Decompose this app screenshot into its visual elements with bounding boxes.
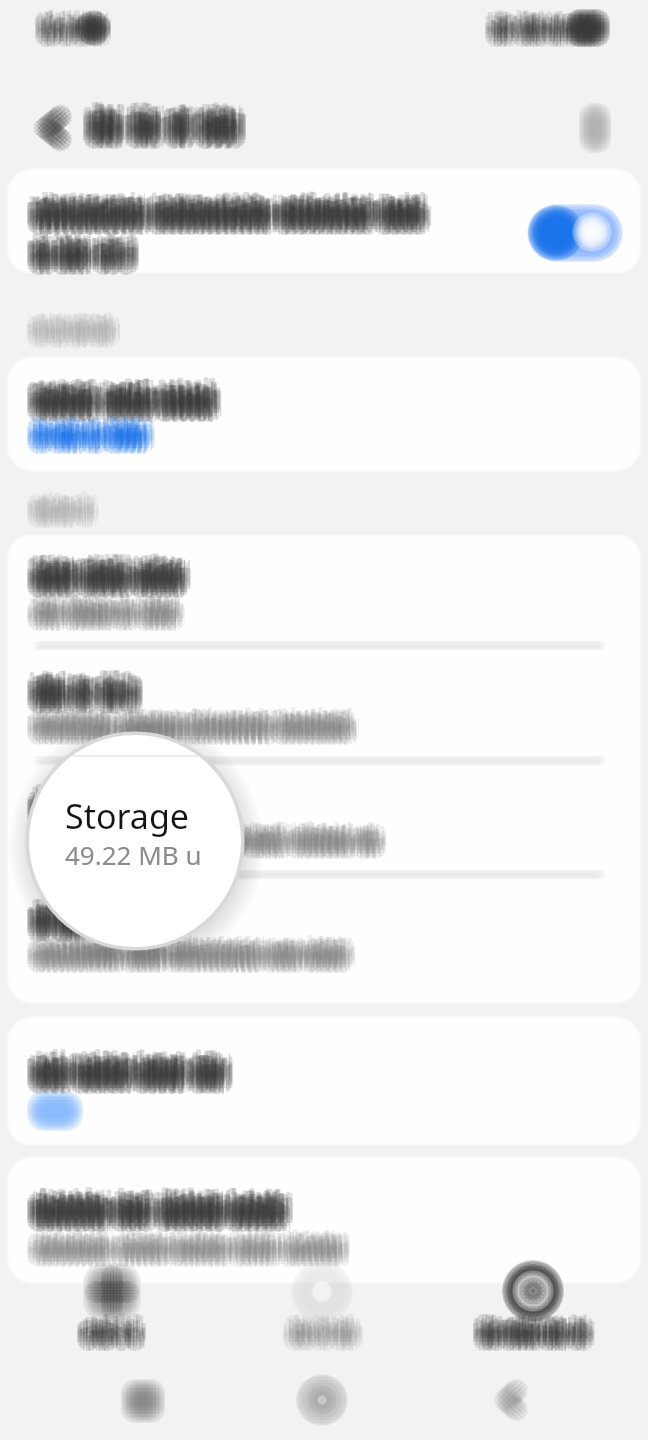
button[interactable]: App details in store [10,1160,638,1280]
button[interactable]: Storage [10,760,638,874]
button[interactable]: Home [286,1372,358,1430]
staticText: 49.22 MB u [65,837,202,872]
button[interactable]: Search [216,1262,432,1358]
button[interactable]: Remove permissions if app is unused [10,172,638,270]
button[interactable]: Apps [8,1262,216,1358]
button[interactable]: Set as default [10,360,638,468]
button[interactable]: More options [568,98,628,160]
button[interactable]: Memory [10,874,638,1000]
button[interactable]: Back [18,98,80,160]
button[interactable]: Mobile data [10,538,638,646]
button[interactable]: Settings [432,1262,640,1358]
button[interactable]: Open by default [10,1020,638,1142]
button[interactable]: Recent apps [96,1372,188,1430]
other: Storage, 49.22 MB used [29,735,241,947]
staticText: Storage [65,793,190,839]
button[interactable]: Back [466,1372,558,1430]
button[interactable]: Battery [10,646,638,760]
